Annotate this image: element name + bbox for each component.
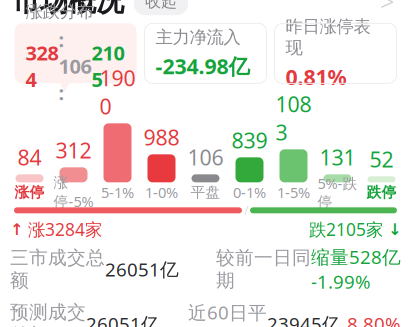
staticText: 涨跌分布 — [25, 1, 93, 22]
staticText: 84 — [17, 143, 41, 171]
staticText: 0.81% — [285, 62, 346, 91]
staticText: -234.98亿 — [155, 52, 249, 80]
staticText: 1083 — [275, 90, 311, 146]
staticText: 0-1% — [233, 183, 266, 202]
staticText: 涨停-5% — [53, 174, 93, 211]
staticText: 131 — [319, 143, 355, 171]
staticText: 1-5% — [277, 183, 310, 202]
staticText: 1900 — [99, 64, 135, 120]
staticText: 涨停 — [14, 183, 44, 201]
staticText: / — [244, 202, 248, 218]
staticText: ↑ — [10, 220, 23, 238]
staticText: 23945亿 — [267, 311, 347, 327]
staticText: 26051亿 — [86, 311, 160, 327]
staticText: 5%-跌停 — [317, 174, 357, 211]
staticText: 平盘 — [190, 183, 220, 201]
button[interactable]: More — [375, 0, 399, 13]
staticText: 839 — [231, 126, 267, 154]
staticText: 主力净流入 — [155, 26, 240, 48]
button[interactable]: 主力净流入 — [144, 23, 266, 83]
staticText: 涨3284家 — [23, 218, 102, 241]
staticText: 106 — [187, 143, 223, 171]
staticText: 昨日涨停表现 — [285, 16, 370, 58]
staticText: 26051亿 — [105, 257, 179, 281]
staticText: 预测成交总额 — [10, 301, 86, 327]
staticText: 52 — [369, 145, 393, 173]
staticText: 较前一日同期 — [216, 246, 311, 292]
staticText: 5-1% — [101, 183, 134, 202]
staticText: 三市成交总额 — [10, 246, 105, 292]
staticText: 3284 — [25, 39, 58, 92]
staticText: 市场概况 — [12, 0, 124, 19]
staticText: ↓ — [388, 220, 401, 238]
staticText: ▼ — [60, 80, 69, 94]
staticText: 312 — [55, 136, 91, 164]
staticText: 跌2105家 — [309, 218, 388, 241]
staticText: 8.80% — [347, 311, 401, 327]
button[interactable]: 收起 — [134, 0, 188, 15]
staticText: 1-0% — [145, 183, 178, 202]
staticText: 收起 — [145, 0, 177, 11]
staticText: 跌停 — [366, 183, 396, 201]
button[interactable]: 昨日涨停表现 — [274, 23, 396, 83]
staticText: > — [380, 0, 394, 18]
button[interactable]: 涨跌分布 — [14, 23, 136, 83]
staticText: 2105 — [91, 39, 124, 92]
staticText: :106: — [58, 26, 91, 106]
staticText: 988 — [143, 123, 179, 151]
staticText: 缩量528亿 -1.99% — [311, 244, 401, 294]
staticText: 近60日平均 — [188, 300, 267, 327]
